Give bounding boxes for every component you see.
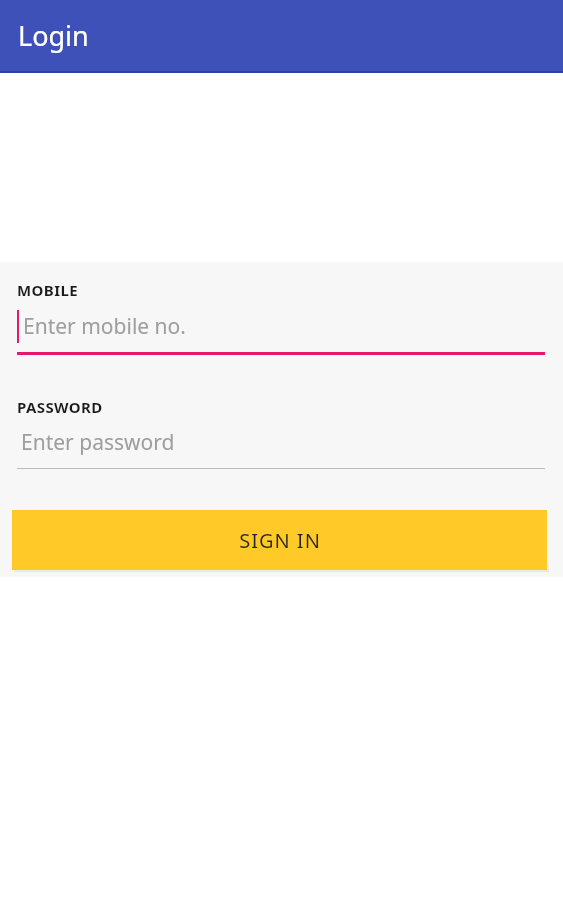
button[interactable]: SIGN IN	[12, 510, 547, 570]
staticText: MOBILE	[17, 280, 79, 300]
staticText: SIGN IN	[239, 527, 321, 554]
staticText: Login	[18, 17, 89, 54]
button[interactable]: Enter mobile no.	[0, 300, 563, 355]
staticText: Enter mobile no.	[23, 312, 186, 341]
button[interactable]: Enter password	[0, 417, 563, 469]
staticText: PASSWORD	[17, 397, 103, 417]
staticText: Enter password	[21, 428, 175, 457]
